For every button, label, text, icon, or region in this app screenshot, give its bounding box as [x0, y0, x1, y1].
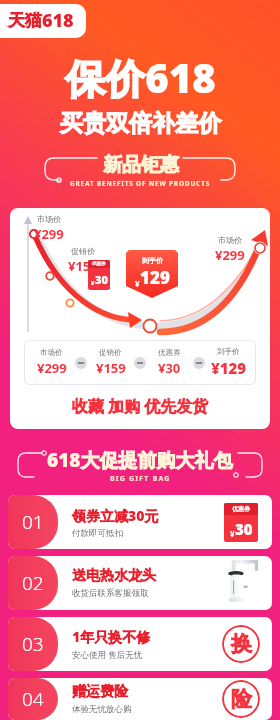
button[interactable]: 天猫 — [0, 4, 86, 38]
staticText: 天猫 — [8, 10, 42, 31]
staticText: 领券立减30元 — [72, 506, 159, 525]
staticText: 新品钜惠 — [103, 153, 179, 177]
staticText: 129 — [140, 266, 170, 289]
staticText: ¥ — [91, 279, 95, 287]
staticText: 618 — [42, 8, 74, 33]
staticText: 02 — [22, 570, 44, 596]
staticText: 保价618 — [65, 50, 216, 105]
staticText: ¥299 — [215, 246, 245, 264]
staticText: ¥159 — [68, 257, 98, 275]
staticText: 优惠券 — [158, 348, 181, 357]
staticText: 市场价 — [37, 214, 61, 224]
staticText: 618大促提前购大礼包 — [47, 447, 233, 473]
staticText: 优惠券 — [232, 505, 250, 513]
staticText: 到手价 — [142, 256, 163, 265]
staticText: 安心使用 售后无忧 — [72, 649, 143, 661]
staticText: 30 — [95, 272, 108, 287]
staticText: ¥30 — [158, 359, 181, 377]
staticText: 03 — [22, 631, 44, 657]
button[interactable]: 02 — [8, 556, 272, 610]
button[interactable]: 01 — [8, 495, 272, 549]
staticText: ¥159 — [96, 359, 126, 377]
button[interactable]: 优惠券30元 — [88, 260, 110, 290]
staticText: GREAT BENEFITS OF NEW PRODUCTS — [70, 179, 211, 188]
staticText: 收货后联系客服领取 — [72, 588, 149, 599]
staticText: BIG GIFT BAG — [110, 474, 171, 484]
staticText: 体验无忧放心购 — [72, 704, 132, 715]
staticText: 买贵双倍补差价 — [60, 109, 221, 138]
staticText: 收藏 加购 优先发货 — [10, 395, 270, 417]
staticText: 到手价 — [217, 347, 240, 356]
button[interactable]: 领取30元优惠券 — [224, 503, 258, 542]
staticText: ¥129 — [211, 358, 247, 378]
staticText: 04 — [22, 686, 44, 712]
staticText: 1年只换不修 — [72, 627, 151, 646]
button[interactable]: 险 — [222, 680, 260, 718]
staticText: 赠运费险 — [72, 683, 128, 701]
staticText: 优惠券 — [92, 261, 106, 267]
staticText: ¥299 — [37, 359, 67, 377]
staticText: 送电热水龙头 — [72, 567, 156, 585]
staticText: 市场价 — [40, 348, 63, 357]
staticText: 01 — [22, 509, 44, 535]
staticText: 市场价 — [218, 235, 242, 245]
button[interactable]: 换 — [222, 625, 260, 663]
staticText: ¥ — [230, 528, 235, 539]
staticText: 促销价 — [99, 348, 122, 357]
staticText: 换 — [231, 631, 252, 657]
staticText: ¥ — [135, 278, 140, 289]
button[interactable]: 到手价 — [126, 250, 178, 298]
staticText: 促销价 — [71, 246, 95, 256]
staticText: 30 — [235, 519, 253, 539]
staticText: 付款即可抵扣 — [72, 528, 123, 539]
button[interactable]: 04 — [8, 678, 272, 720]
other: 电热水龙头 — [218, 558, 264, 608]
staticText: 险 — [231, 686, 252, 712]
button[interactable]: 03 — [8, 617, 272, 671]
staticText: ¥299 — [34, 225, 64, 243]
